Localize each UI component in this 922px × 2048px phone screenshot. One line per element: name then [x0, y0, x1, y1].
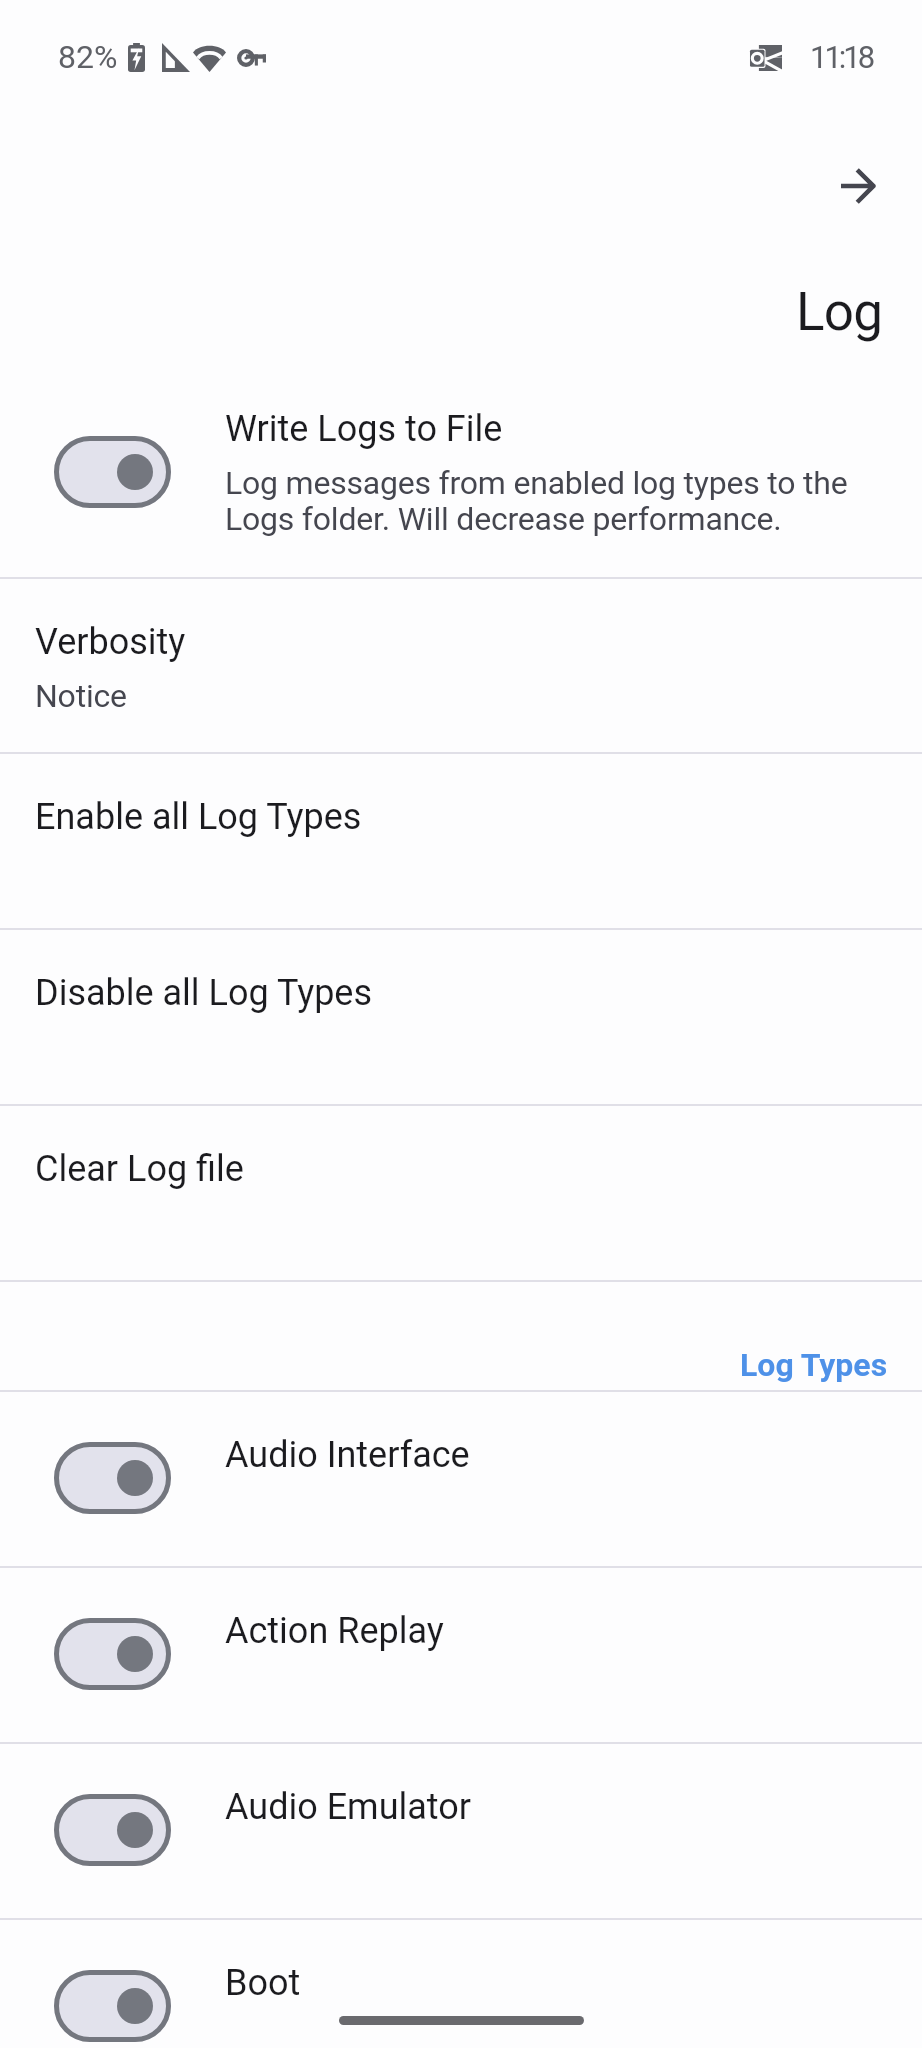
button[interactable]: Boot: [0, 1920, 922, 2048]
button[interactable]: Enable all Log Types: [0, 754, 922, 928]
button[interactable]: Audio Interface: [0, 1392, 922, 1566]
staticText: Log messages from enabled log types to t…: [225, 464, 885, 537]
staticText: Audio Interface: [225, 1434, 470, 1476]
button[interactable]: Action Replay: [0, 1568, 922, 1742]
staticText: Audio Emulator: [225, 1786, 472, 1828]
staticText: 82%: [58, 38, 118, 76]
staticText: Notice: [35, 677, 127, 715]
staticText: 11:18: [810, 39, 873, 75]
button[interactable]: Audio Emulator: [0, 1744, 922, 1918]
staticText: Boot: [225, 1962, 301, 2004]
button[interactable]: Disable all Log Types: [0, 930, 922, 1104]
button[interactable]: Write Logs to File: [0, 366, 922, 577]
staticText: Action Replay: [225, 1610, 444, 1652]
staticText: Disable all Log Types: [35, 972, 373, 1014]
button[interactable]: Navigate forward: [832, 159, 886, 213]
staticText: Enable all Log Types: [35, 796, 362, 838]
button[interactable]: Log Types: [0, 1282, 922, 1390]
staticText: Write Logs to File: [225, 408, 503, 450]
staticText: Clear Log file: [35, 1148, 244, 1190]
staticText: Log: [796, 281, 883, 343]
staticText: Log Types: [740, 1346, 888, 1384]
staticText: Verbosity: [35, 621, 186, 663]
button[interactable]: Clear Log file: [0, 1106, 922, 1280]
button[interactable]: Verbosity: [0, 579, 922, 752]
